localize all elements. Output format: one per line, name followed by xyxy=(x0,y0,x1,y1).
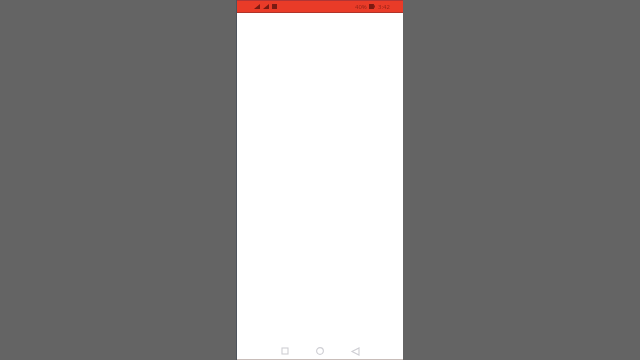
button[interactable]: Back xyxy=(348,344,362,358)
staticText: 3:42 xyxy=(378,3,390,11)
button[interactable]: Home xyxy=(313,344,327,358)
button[interactable]: Recents xyxy=(278,344,292,358)
staticText: 40% xyxy=(355,3,367,11)
